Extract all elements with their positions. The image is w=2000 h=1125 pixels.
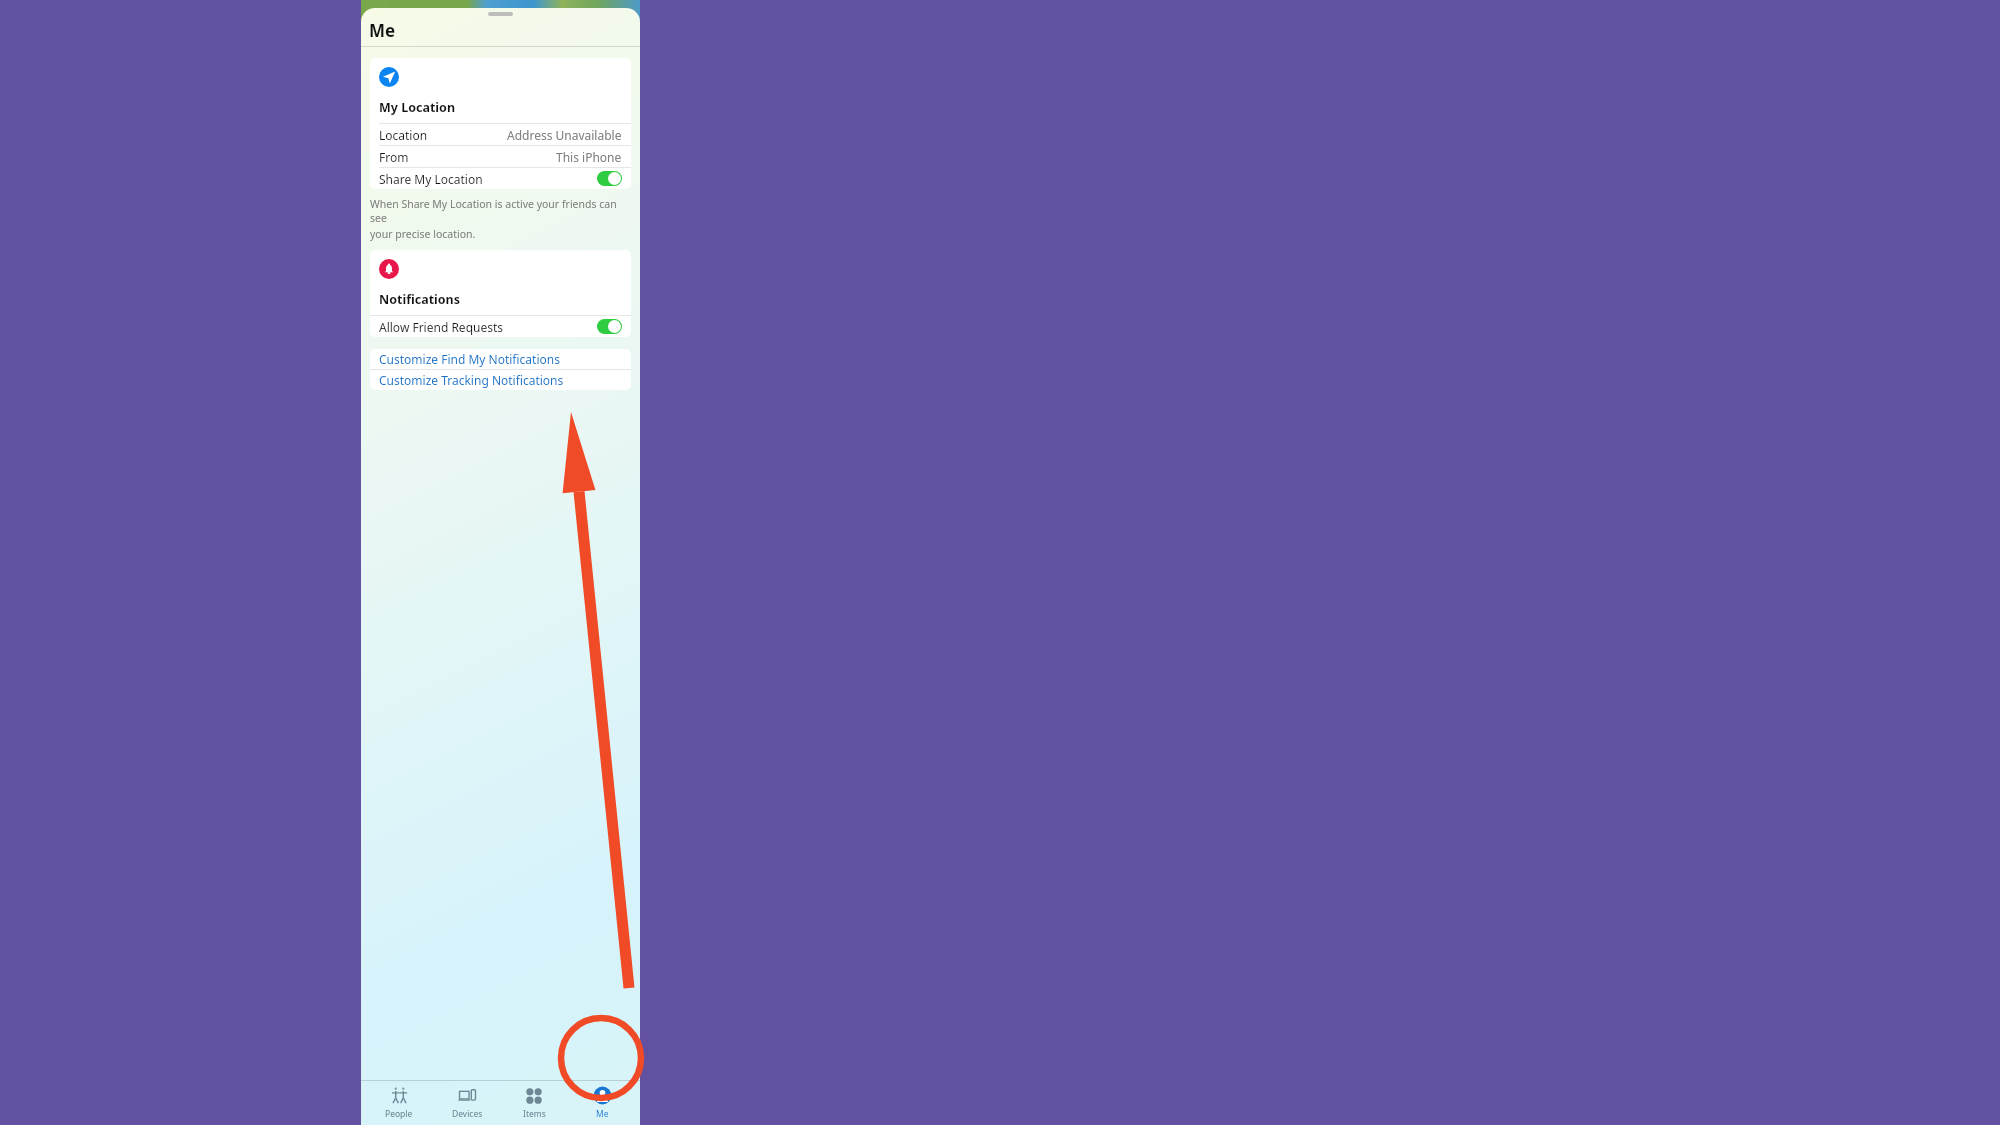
staticText: Notifications xyxy=(379,291,461,308)
staticText: My Location xyxy=(379,99,456,116)
staticText: Location xyxy=(379,127,428,143)
button[interactable]: Items xyxy=(504,1081,564,1125)
button[interactable]: Customize Tracking Notifications xyxy=(370,370,631,390)
staticText: Items xyxy=(523,1108,546,1120)
button[interactable]: Toggle on xyxy=(597,171,622,186)
staticText: From xyxy=(379,149,409,165)
button[interactable]: Location xyxy=(370,124,631,145)
staticText: Me xyxy=(369,19,396,42)
staticText: Address Unavailable xyxy=(507,127,622,143)
staticText: Share My Location xyxy=(379,171,483,187)
staticText: Customize Tracking Notifications xyxy=(379,372,564,388)
staticText: Devices xyxy=(452,1108,483,1120)
button[interactable]: Devices xyxy=(437,1081,497,1125)
staticText: People xyxy=(385,1108,413,1120)
staticText: This iPhone xyxy=(556,149,622,165)
staticText: Customize Find My Notifications xyxy=(379,351,560,367)
button[interactable]: Toggle on xyxy=(597,319,622,334)
button[interactable]: Me xyxy=(572,1081,632,1125)
button[interactable]: Share My Location xyxy=(370,168,631,189)
staticText: Allow Friend Requests xyxy=(379,319,504,335)
button[interactable]: People xyxy=(369,1081,429,1125)
staticText: Me xyxy=(596,1108,609,1120)
staticText: your precise location. xyxy=(370,227,476,241)
button[interactable]: Allow Friend Requests xyxy=(370,316,631,337)
button[interactable]: Customize Find My Notifications xyxy=(370,349,631,369)
staticText: When Share My Location is active your fr… xyxy=(370,197,631,225)
button[interactable]: From xyxy=(370,146,631,167)
